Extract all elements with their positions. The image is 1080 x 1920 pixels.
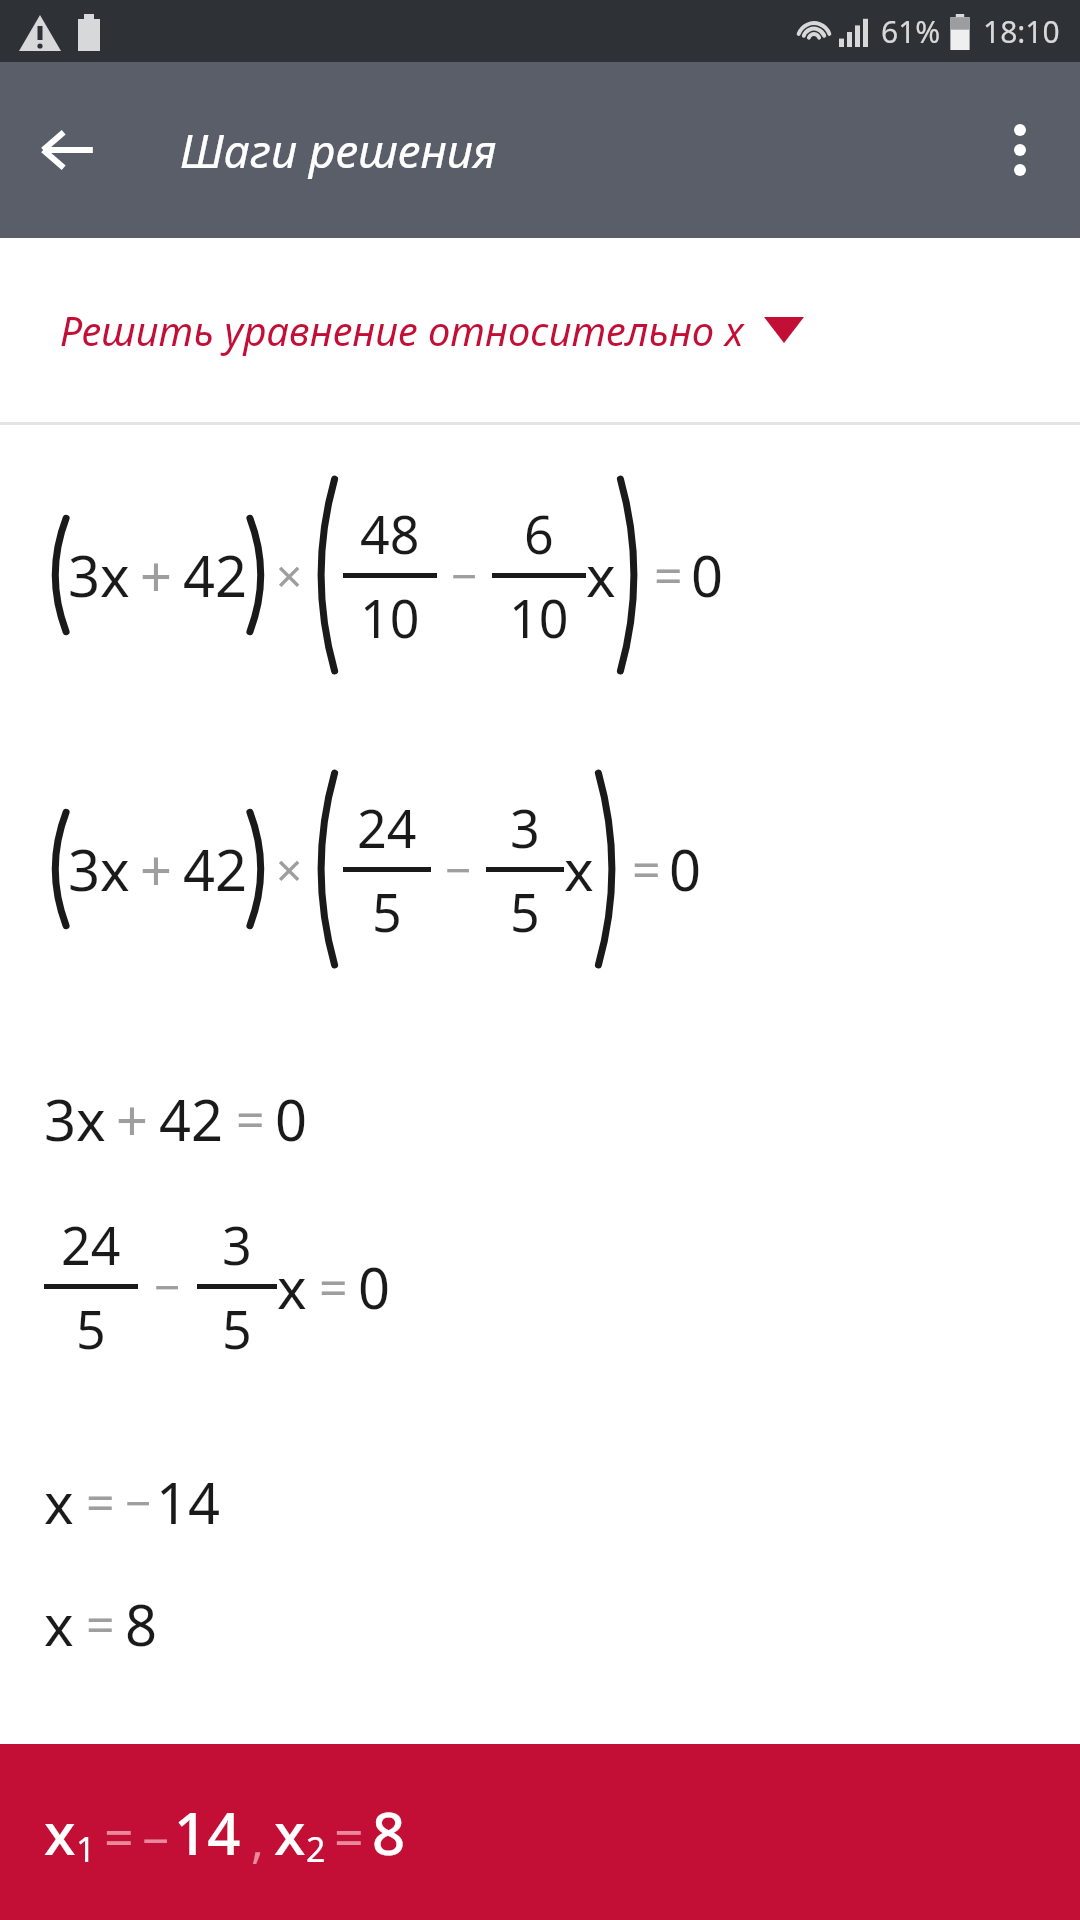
- staticText: x: [277, 1249, 307, 1325]
- staticText: =: [236, 1085, 265, 1153]
- staticText: Шаги решения: [180, 119, 497, 182]
- button[interactable]: Решить уравнение относительно x: [0, 238, 1080, 422]
- staticText: 14: [174, 1793, 241, 1872]
- staticText: 14: [156, 1464, 221, 1540]
- staticText: =: [104, 1801, 134, 1872]
- staticText: Решить уравнение относительно x: [60, 303, 744, 357]
- staticText: =: [86, 1590, 115, 1658]
- staticText: 42: [159, 1081, 224, 1157]
- staticText: x: [44, 1586, 74, 1662]
- staticText: −: [125, 1471, 152, 1534]
- button[interactable]: Back: [24, 106, 112, 194]
- staticText: −: [154, 1255, 181, 1318]
- staticText: ×: [276, 838, 303, 901]
- staticText: 0: [275, 1081, 308, 1157]
- staticText: 24: [61, 1209, 121, 1280]
- staticText: 3: [222, 1209, 252, 1280]
- staticText: ×: [276, 544, 303, 607]
- staticText: 3x: [68, 831, 130, 907]
- button[interactable]: More options: [976, 106, 1064, 194]
- staticText: 24: [357, 792, 417, 863]
- staticText: +: [116, 1081, 149, 1157]
- staticText: 5: [76, 1293, 106, 1364]
- staticText: =: [334, 1801, 364, 1872]
- staticText: 0: [669, 831, 702, 907]
- staticText: −: [445, 838, 472, 901]
- staticText: −: [142, 1807, 170, 1872]
- staticText: =: [632, 835, 661, 903]
- staticText: =: [654, 541, 683, 609]
- staticText: 3x: [44, 1081, 106, 1157]
- staticText: +: [140, 537, 173, 613]
- staticText: 10: [360, 582, 420, 653]
- staticText: 8: [125, 1586, 158, 1662]
- staticText: 5: [372, 876, 402, 947]
- staticText: x: [44, 1464, 74, 1540]
- staticText: 5: [510, 876, 540, 947]
- staticText: ,: [251, 1807, 264, 1872]
- staticText: x: [586, 537, 616, 613]
- staticText: x: [44, 1793, 76, 1872]
- staticText: 48: [360, 498, 420, 569]
- staticText: 3: [510, 792, 540, 863]
- staticText: 18:10: [983, 11, 1060, 52]
- staticText: 0: [691, 537, 724, 613]
- staticText: 61%: [881, 11, 941, 52]
- staticText: 6: [524, 498, 554, 569]
- staticText: 0: [358, 1249, 391, 1325]
- staticText: x: [564, 831, 594, 907]
- staticText: 5: [222, 1293, 252, 1364]
- staticText: =: [319, 1253, 348, 1321]
- staticText: =: [86, 1468, 115, 1536]
- staticText: 42: [183, 537, 248, 613]
- staticText: 8: [372, 1793, 406, 1872]
- staticText: 42: [183, 831, 248, 907]
- staticText: x: [274, 1793, 306, 1872]
- staticText: +: [140, 831, 173, 907]
- staticText: −: [451, 544, 478, 607]
- staticText: 10: [509, 582, 569, 653]
- staticText: 2: [306, 1826, 326, 1872]
- staticText: 3x: [68, 537, 130, 613]
- staticText: 1: [76, 1826, 96, 1872]
- button[interactable]: x: [0, 1744, 1080, 1920]
